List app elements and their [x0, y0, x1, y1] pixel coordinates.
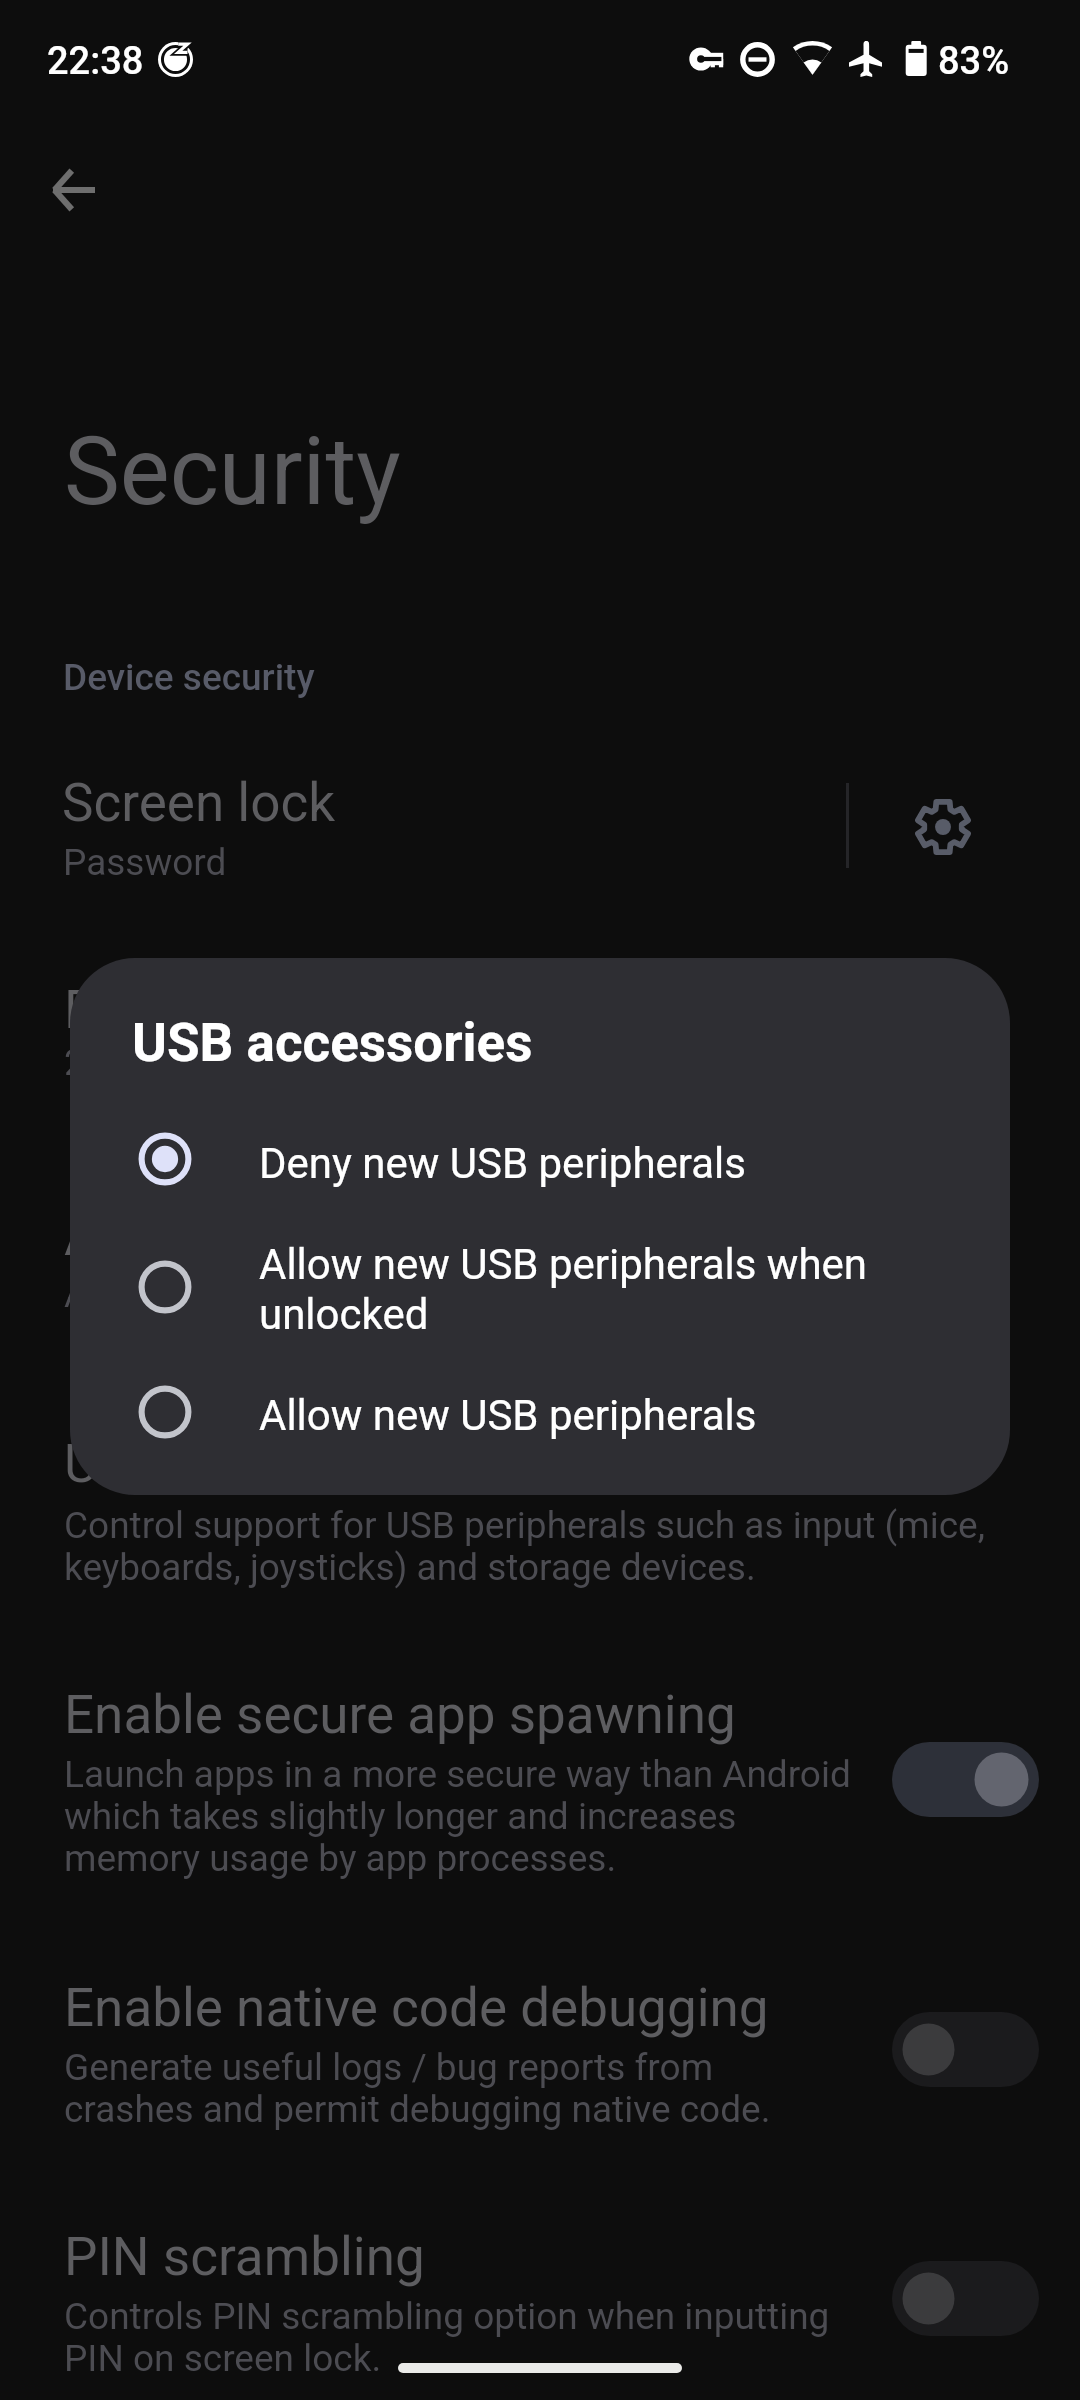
staticText: USB accessories	[132, 1012, 533, 1074]
button[interactable]: Deny new USB peripherals	[70, 1109, 1010, 1209]
staticText: Security	[64, 417, 401, 527]
button[interactable]: USB accessories	[0, 1433, 1080, 1600]
staticText: Allowed	[64, 1273, 196, 1316]
button[interactable]: Back	[25, 142, 121, 238]
staticText: Controls PIN scrambling option when inpu…	[64, 2295, 830, 2380]
staticText: Allow new USB peripherals	[259, 1391, 757, 1440]
staticText: Device security	[63, 656, 315, 699]
button[interactable]: Dismiss dialog	[0, 0, 1080, 2400]
button[interactable]: Private space	[0, 979, 1080, 1095]
button[interactable]: App pinning	[0, 1206, 1080, 1327]
staticText: Control support for USB peripherals such…	[64, 1504, 985, 1589]
staticText: App pinning	[64, 1206, 345, 1268]
button[interactable]: Screen lock settings	[866, 752, 1020, 902]
button[interactable]: Enable secure app spawning	[0, 1684, 1080, 1891]
staticText: Deny new USB peripherals	[259, 1139, 746, 1188]
staticText: Screen lock	[62, 772, 336, 834]
staticText: 83%	[938, 39, 1010, 84]
button[interactable]: Allow new USB peripherals when unlocked	[70, 1227, 1010, 1347]
button[interactable]: Enable native code debugging	[0, 1977, 1080, 2142]
button[interactable]: Screen lock	[0, 752, 846, 902]
staticText: Generate useful logs / bug reports from …	[64, 2046, 771, 2131]
staticText: Private space	[64, 979, 383, 1041]
button[interactable]: PIN scrambling	[0, 2226, 1080, 2391]
staticText: Enable native code debugging	[64, 1977, 769, 2039]
button[interactable]: Switch off	[892, 2261, 1039, 2336]
staticText: PIN scrambling	[64, 2226, 425, 2288]
button[interactable]: Switch on	[892, 1742, 1039, 1817]
staticText: Allow new USB peripherals when unlocked	[259, 1240, 867, 1339]
staticText: Launch apps in a more secure way than An…	[64, 1753, 851, 1880]
staticText: USB accessories	[64, 1433, 460, 1495]
staticText: 2 apps	[64, 1041, 175, 1084]
staticText: 22:38	[47, 39, 144, 84]
button[interactable]: Allow new USB peripherals	[70, 1362, 1010, 1462]
staticText: Password	[63, 841, 227, 884]
button[interactable]: Switch off	[892, 2012, 1039, 2087]
staticText: Enable secure app spawning	[64, 1684, 736, 1746]
